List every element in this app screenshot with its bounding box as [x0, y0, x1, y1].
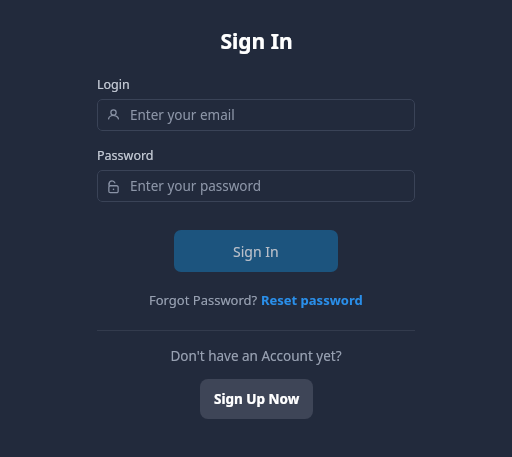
staticText: Sign In	[233, 242, 279, 261]
button[interactable]: Password	[97, 170, 415, 202]
button[interactable]: Sign Up Now	[200, 379, 313, 419]
staticText: Don't have an Account yet?	[170, 347, 342, 365]
staticText: Sign Up Now	[214, 390, 300, 408]
staticText: Password	[97, 147, 154, 164]
other: Password	[106, 179, 121, 194]
other: Login	[106, 108, 121, 123]
staticText: Reset password	[261, 291, 363, 309]
staticText: Enter your email	[130, 106, 235, 124]
staticText: Sign In	[220, 27, 293, 56]
staticText: Enter your password	[130, 177, 262, 195]
button[interactable]: Login	[97, 99, 415, 131]
staticText: Login	[97, 76, 130, 93]
staticText: Forgot Password?	[149, 291, 261, 309]
button[interactable]: Sign In	[174, 230, 338, 272]
button[interactable]: Reset password	[261, 291, 363, 309]
